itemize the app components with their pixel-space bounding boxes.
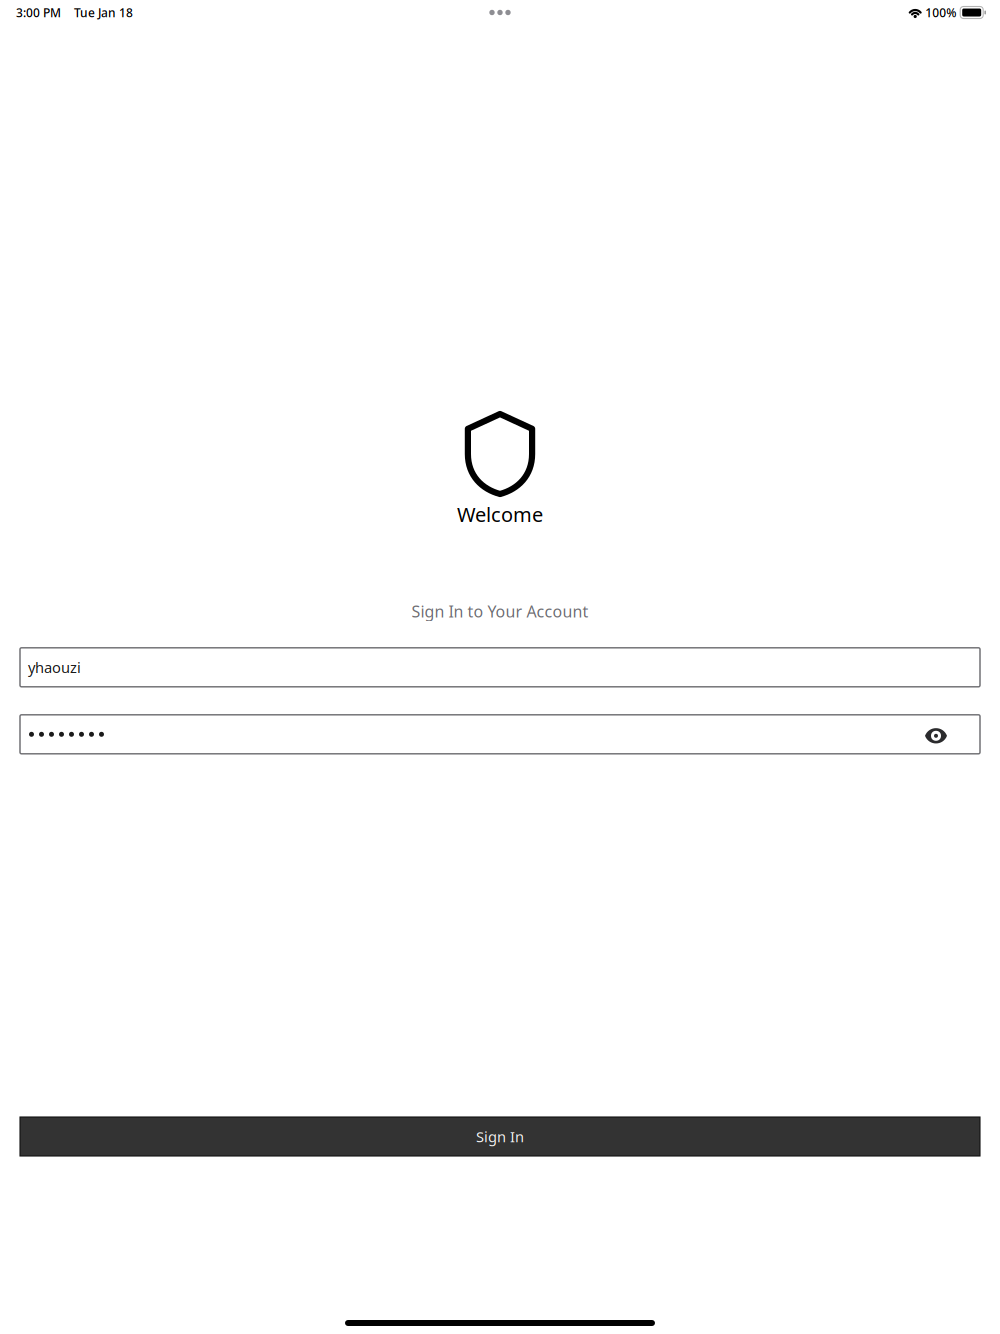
staticText: Tue Jan 18 [74, 4, 133, 20]
staticText: Welcome [457, 501, 543, 528]
staticText: yhaouzi [28, 658, 81, 677]
button[interactable]: Show password [918, 715, 954, 754]
staticText: 100% [925, 4, 956, 20]
button[interactable]: Sign In [20, 1117, 980, 1156]
staticText: 3:00 PM [16, 4, 61, 20]
button[interactable]: Password [20, 715, 918, 754]
staticText: Sign In to Your Account [411, 601, 588, 622]
button[interactable]: yhaouzi [20, 648, 980, 687]
staticText: Sign In [476, 1127, 524, 1146]
